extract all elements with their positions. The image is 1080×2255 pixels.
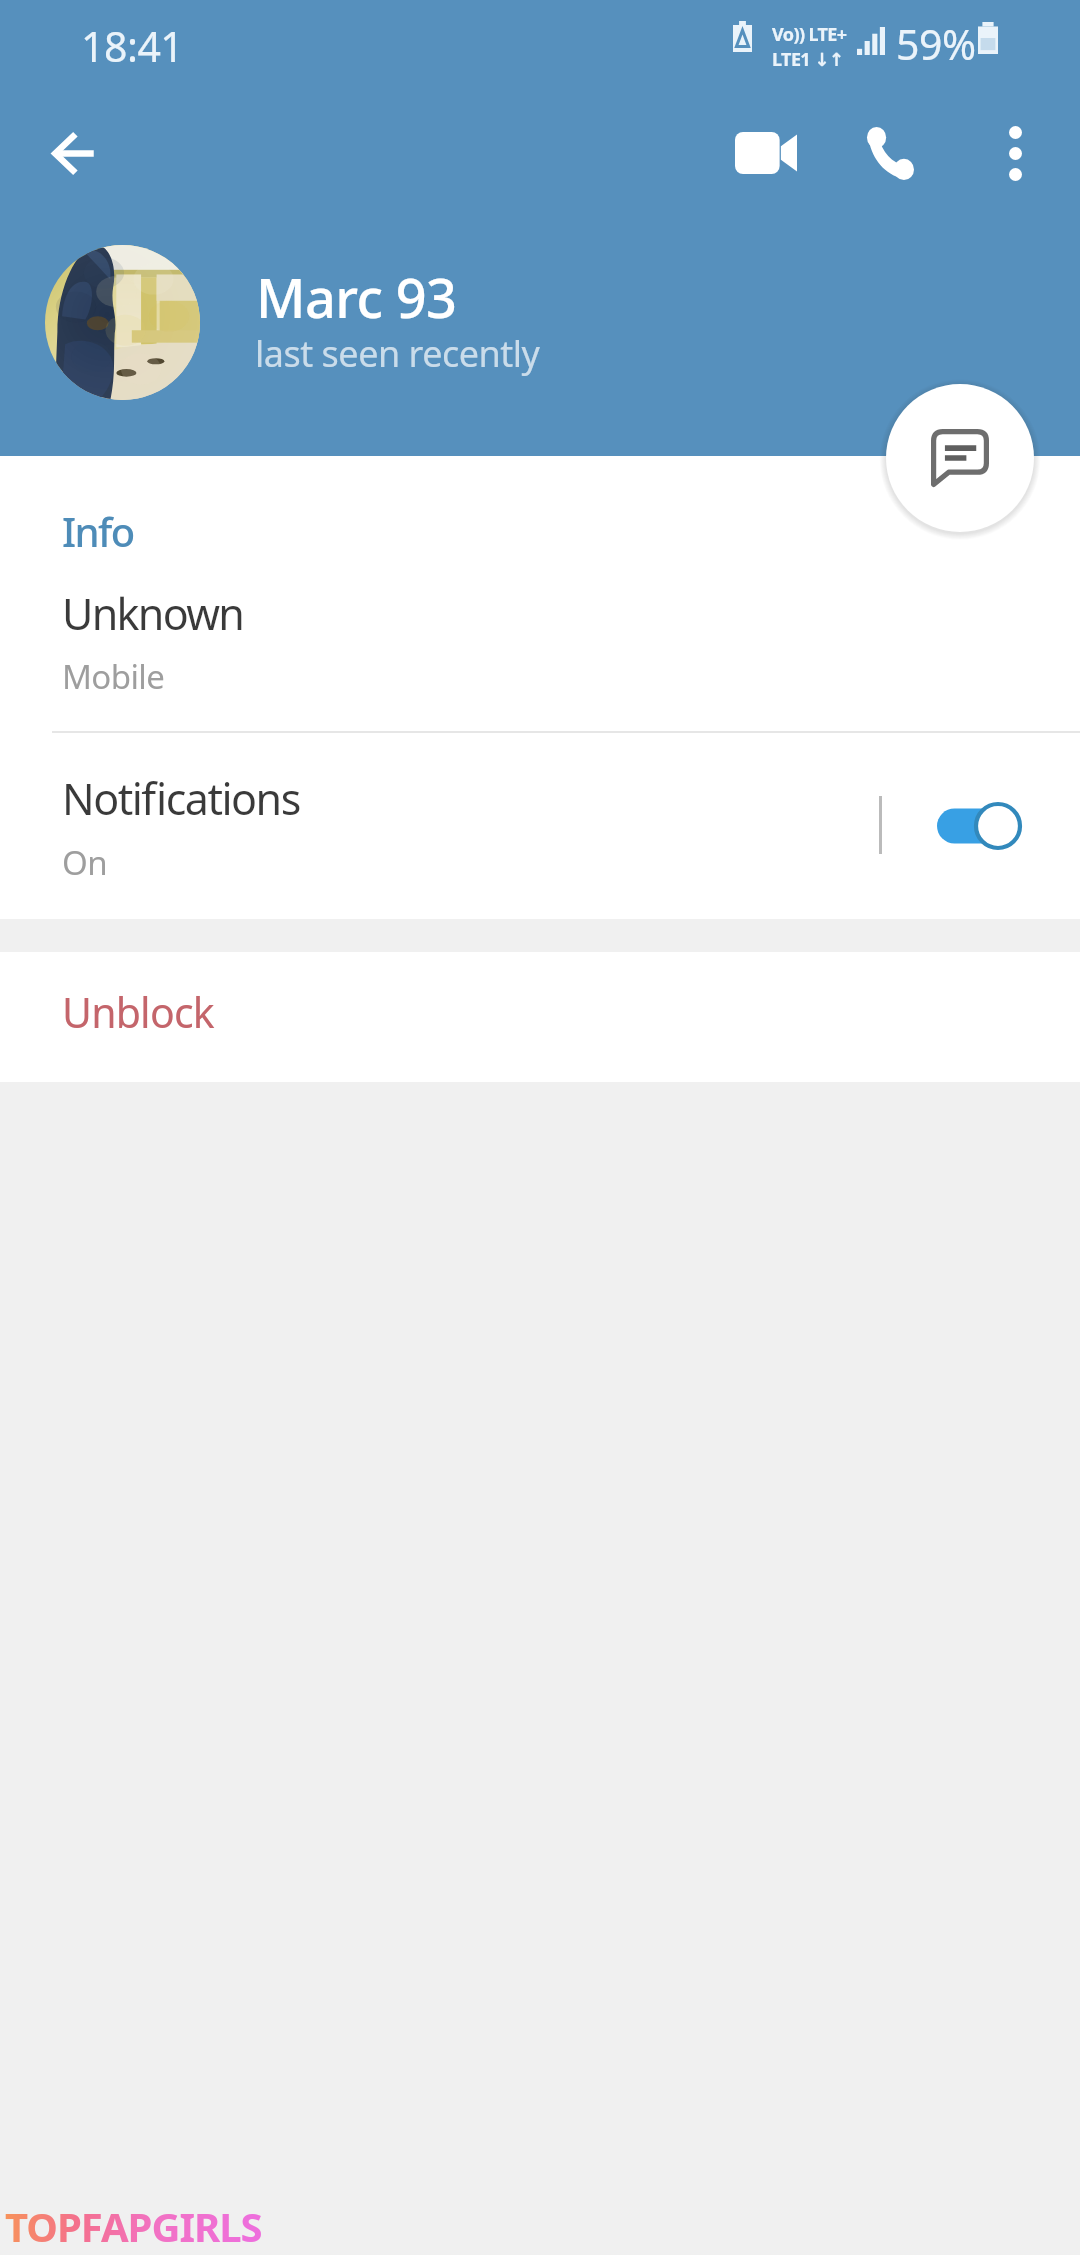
button[interactable]: Notifications toggle	[925, 788, 1035, 864]
staticText: Notifications	[62, 769, 300, 828]
staticText: On	[62, 840, 107, 885]
button[interactable]: Video call	[712, 99, 820, 207]
button[interactable]: More options	[961, 99, 1069, 207]
button[interactable]: Unknown	[0, 560, 1080, 728]
staticText: Unknown	[62, 584, 244, 643]
staticText: Unblock	[62, 984, 214, 1040]
button[interactable]: Back	[20, 99, 128, 207]
staticText: 18:41	[81, 18, 184, 74]
staticText: TOPFAPGIRLS	[5, 2199, 262, 2253]
staticText: last seen recently	[255, 329, 540, 378]
button[interactable]: Profile photo	[45, 245, 200, 400]
staticText: 59%	[896, 16, 976, 72]
staticText: LTE1 ↓↑	[772, 47, 844, 72]
button[interactable]: Send message	[886, 384, 1034, 532]
button[interactable]: Unblock	[0, 952, 1080, 1082]
staticText: Marc 93	[256, 260, 457, 334]
button[interactable]: Call	[836, 99, 944, 207]
button[interactable]: Notifications	[0, 733, 1080, 918]
staticText: Mobile	[62, 654, 165, 699]
staticText: Vo)) LTE+	[772, 22, 847, 47]
staticText: Info	[62, 504, 134, 558]
